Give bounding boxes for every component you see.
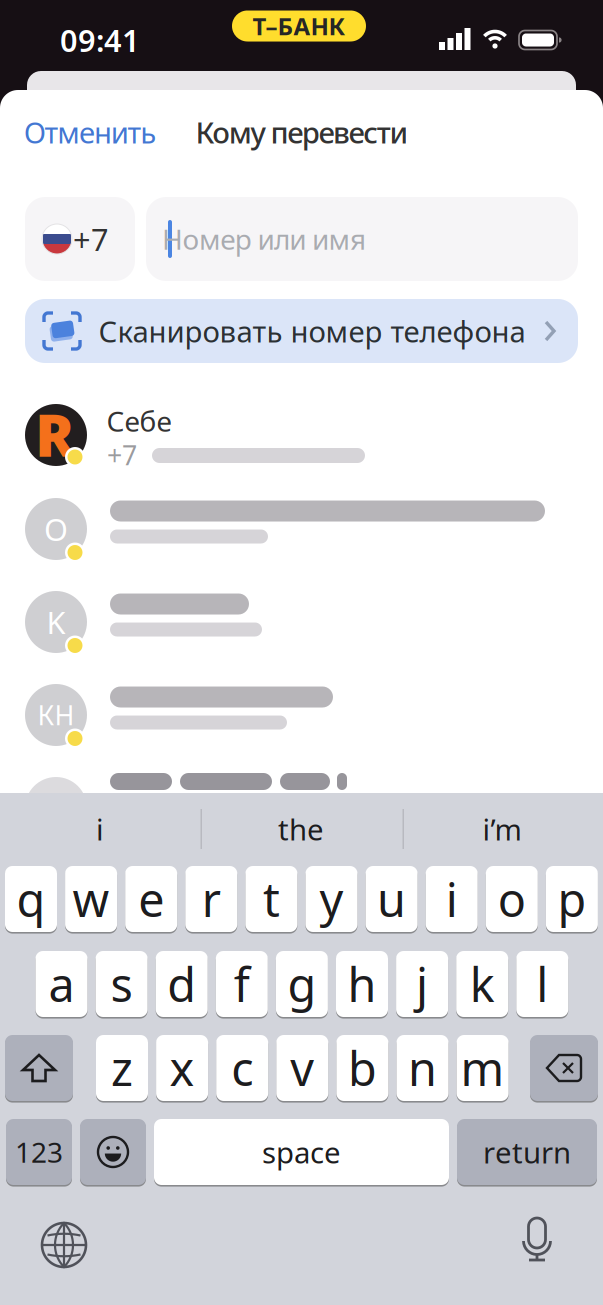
- button[interactable]: z: [96, 1035, 148, 1103]
- staticText: c: [231, 1037, 253, 1099]
- staticText: O: [44, 509, 68, 549]
- button[interactable]: c: [216, 1035, 268, 1103]
- button[interactable]: x: [156, 1035, 208, 1103]
- button[interactable]: s: [96, 951, 148, 1019]
- staticText: p: [557, 868, 586, 930]
- button[interactable]: Emoji: [80, 1119, 146, 1187]
- button[interactable]: h: [336, 951, 388, 1019]
- staticText: Т–БАНК: [252, 10, 345, 42]
- button[interactable]: d: [156, 951, 208, 1019]
- staticText: Номер или имя: [162, 220, 366, 258]
- button[interactable]: +7: [25, 197, 135, 281]
- staticText: y: [319, 868, 343, 930]
- button[interactable]: i: [426, 866, 478, 934]
- button[interactable]: Контакт: [0, 575, 603, 668]
- staticText: e: [138, 868, 164, 930]
- button[interactable]: m: [457, 1035, 509, 1103]
- button[interactable]: f: [216, 951, 268, 1019]
- button[interactable]: return: [457, 1119, 597, 1187]
- staticText: КН: [37, 697, 74, 733]
- button[interactable]: i: [5, 804, 195, 854]
- staticText: 123: [15, 1133, 63, 1171]
- staticText: l: [536, 953, 548, 1015]
- button[interactable]: g: [276, 951, 328, 1019]
- staticText: 09:41: [60, 20, 140, 60]
- staticText: the: [278, 809, 324, 848]
- button[interactable]: the: [206, 804, 396, 854]
- staticText: h: [347, 953, 376, 1015]
- button[interactable]: Shift: [5, 1035, 73, 1103]
- staticText: i: [446, 868, 458, 930]
- button[interactable]: R: [0, 389, 603, 482]
- staticText: Кому перевести: [196, 112, 408, 151]
- staticText: +7: [107, 437, 137, 473]
- staticText: r: [202, 868, 221, 930]
- button[interactable]: j: [396, 951, 448, 1019]
- staticText: o: [498, 868, 526, 930]
- button[interactable]: y: [305, 866, 357, 934]
- staticText: n: [408, 1037, 437, 1099]
- button[interactable]: t: [245, 866, 297, 934]
- staticText: return: [483, 1132, 571, 1171]
- staticText: a: [48, 953, 74, 1015]
- button[interactable]: l: [516, 951, 568, 1019]
- button[interactable]: 123: [6, 1119, 72, 1187]
- button[interactable]: Отменить: [24, 112, 156, 151]
- staticText: u: [377, 868, 406, 930]
- staticText: v: [290, 1037, 314, 1099]
- staticText: R: [35, 395, 75, 473]
- staticText: f: [234, 953, 250, 1015]
- button[interactable]: w: [65, 866, 117, 934]
- staticText: Себе: [106, 402, 171, 440]
- staticText: k: [470, 953, 495, 1015]
- button[interactable]: Dictation: [522, 1217, 552, 1263]
- button[interactable]: r: [185, 866, 237, 934]
- staticText: q: [16, 868, 45, 930]
- staticText: t: [263, 868, 280, 930]
- button[interactable]: Т–БАНК: [232, 10, 366, 42]
- button[interactable]: Контакт: [0, 668, 603, 761]
- staticText: w: [73, 868, 110, 930]
- staticText: b: [348, 1037, 377, 1099]
- button[interactable]: q: [5, 866, 57, 934]
- button[interactable]: Next keyboard: [42, 1223, 86, 1267]
- button[interactable]: a: [35, 951, 87, 1019]
- button[interactable]: Номер или имя: [146, 197, 578, 281]
- button[interactable]: i’m: [407, 804, 597, 854]
- staticText: j: [416, 953, 428, 1015]
- button[interactable]: k: [456, 951, 508, 1019]
- button[interactable]: u: [366, 866, 418, 934]
- staticText: m: [461, 1037, 505, 1099]
- button[interactable]: Delete: [530, 1035, 598, 1103]
- button[interactable]: Контакт: [0, 482, 603, 575]
- staticText: +7: [73, 219, 109, 259]
- button[interactable]: space: [154, 1119, 449, 1187]
- staticText: Сканировать номер телефона: [98, 311, 525, 350]
- staticText: z: [111, 1037, 133, 1099]
- button[interactable]: o: [486, 866, 538, 934]
- staticText: d: [167, 953, 196, 1015]
- button[interactable]: Сканировать номер телефона: [25, 299, 578, 363]
- button[interactable]: e: [125, 866, 177, 934]
- button[interactable]: p: [546, 866, 598, 934]
- button[interactable]: n: [396, 1035, 448, 1103]
- staticText: Отменить: [24, 112, 156, 151]
- button[interactable]: v: [276, 1035, 328, 1103]
- staticText: i: [96, 809, 104, 848]
- staticText: g: [287, 953, 316, 1015]
- button[interactable]: Контакт: [0, 771, 603, 793]
- staticText: K: [46, 602, 65, 642]
- staticText: s: [111, 953, 133, 1015]
- staticText: x: [170, 1037, 195, 1099]
- button[interactable]: b: [336, 1035, 388, 1103]
- staticText: space: [262, 1132, 341, 1171]
- staticText: i’m: [482, 809, 521, 848]
